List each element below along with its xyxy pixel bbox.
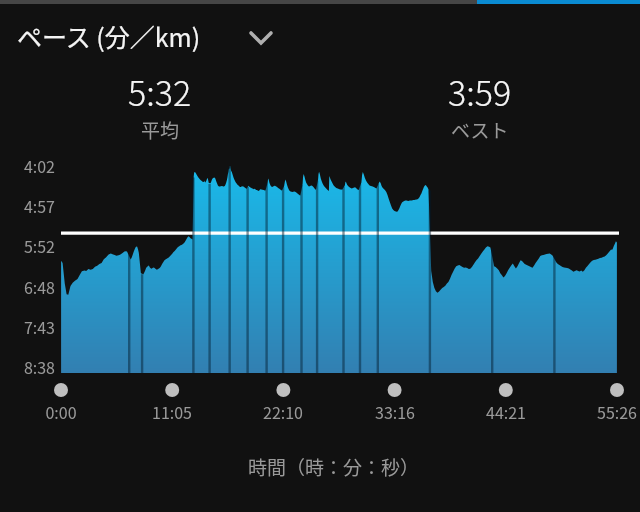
staticText: 11:05 [127, 400, 217, 423]
staticText: 5:32 [128, 67, 192, 116]
other: Change metric [247, 22, 275, 50]
staticText: 7:43 [0, 315, 55, 338]
button[interactable]: 5:32 [0, 67, 320, 144]
staticText: 33:16 [350, 400, 440, 423]
staticText: 平均 [141, 116, 180, 144]
staticText: ベスト [451, 116, 509, 144]
staticText: 5:52 [0, 234, 55, 257]
staticText: 0:00 [16, 400, 106, 423]
staticText: 時間（時：分：秒） [248, 453, 420, 481]
staticText: 44:21 [461, 400, 551, 423]
staticText: 6:48 [0, 275, 55, 298]
staticText: 4:02 [0, 154, 55, 177]
staticText: ペース (分／km) [17, 18, 201, 54]
staticText: 3:59 [448, 67, 512, 116]
staticText: 55:26 [572, 400, 640, 423]
staticText: 22:10 [238, 400, 328, 423]
button[interactable]: 3:59 [320, 67, 640, 144]
button[interactable]: ペース (分／km) [17, 18, 275, 54]
staticText: 4:57 [0, 194, 55, 217]
staticText: 8:38 [0, 355, 55, 378]
